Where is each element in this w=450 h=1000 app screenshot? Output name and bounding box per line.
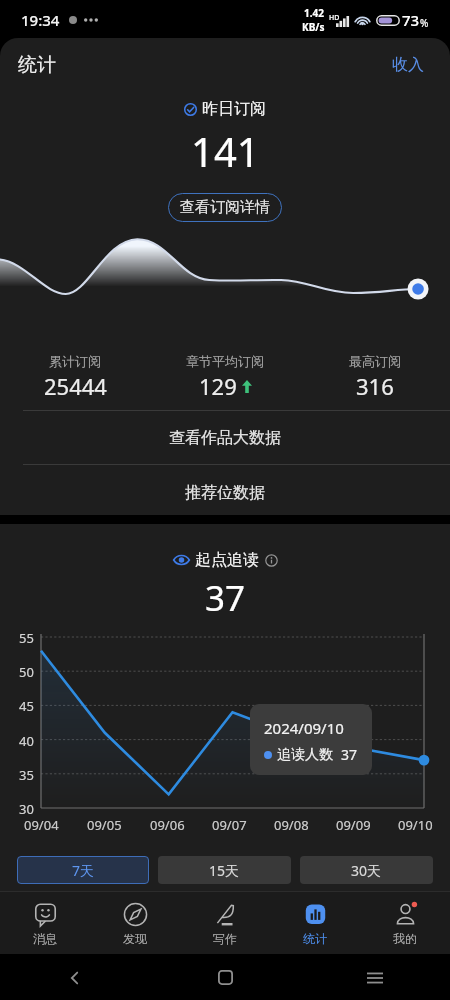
- staticText: 55: [19, 629, 34, 647]
- staticText: 45: [19, 697, 34, 715]
- button[interactable]: 发现: [90, 892, 180, 954]
- staticText: 1.42: [304, 6, 324, 20]
- staticText: 起点追读: [195, 550, 259, 570]
- staticText: 09/07: [212, 816, 247, 834]
- staticText: 查看订阅详情: [180, 198, 270, 217]
- button[interactable]: 写作: [180, 892, 270, 954]
- staticText: 累计订阅: [49, 353, 101, 369]
- staticText: 19:34: [21, 10, 60, 30]
- staticText: 316: [356, 371, 394, 401]
- staticText: 推荐位数据: [185, 483, 265, 503]
- button[interactable]: 统计: [270, 892, 360, 954]
- staticText: 37: [205, 574, 246, 622]
- other: Recents: [367, 972, 383, 984]
- staticText: 发现: [123, 931, 147, 946]
- staticText: 09/06: [150, 816, 185, 834]
- staticText: 50: [19, 663, 34, 681]
- staticText: 09/10: [398, 816, 433, 834]
- button[interactable]: 查看订阅详情: [168, 193, 282, 222]
- staticText: %: [420, 16, 429, 30]
- button[interactable]: 查看作品大数据: [0, 411, 450, 464]
- other: Back: [67, 970, 83, 986]
- staticText: 37: [341, 745, 358, 764]
- staticText: 30: [19, 800, 34, 818]
- staticText: 追读人数: [277, 746, 333, 764]
- staticText: 30天: [351, 861, 382, 880]
- staticText: 我的: [393, 931, 417, 946]
- staticText: 25444: [44, 371, 107, 401]
- staticText: 昨日订阅: [202, 99, 266, 119]
- button[interactable]: 消息: [0, 892, 90, 954]
- staticText: 消息: [33, 931, 57, 946]
- staticText: 09/05: [87, 816, 122, 834]
- staticText: 统计: [18, 53, 56, 77]
- staticText: 40: [19, 732, 34, 750]
- button[interactable]: 7天: [17, 856, 149, 884]
- button[interactable]: 15天: [158, 856, 291, 884]
- staticText: 73: [402, 10, 420, 30]
- staticText: 查看作品大数据: [169, 428, 281, 448]
- staticText: 129: [199, 371, 237, 401]
- staticText: 统计: [303, 931, 327, 946]
- button[interactable]: 推荐位数据: [0, 468, 450, 515]
- staticText: 2024/09/10: [264, 718, 344, 738]
- other: Home: [218, 970, 233, 985]
- other: Info: [265, 554, 278, 567]
- button[interactable]: 30天: [300, 856, 433, 884]
- button[interactable]: 我的: [360, 892, 450, 954]
- staticText: 141: [191, 124, 260, 178]
- staticText: KB/s: [302, 20, 325, 34]
- staticText: 章节平均订阅: [186, 353, 264, 369]
- staticText: 09/09: [336, 816, 371, 834]
- staticText: HD: [329, 13, 340, 23]
- staticText: 35: [19, 766, 34, 784]
- staticText: 15天: [209, 861, 240, 880]
- staticText: 最高订阅: [349, 353, 401, 369]
- staticText: 09/04: [24, 816, 59, 834]
- staticText: 收入: [392, 55, 424, 75]
- staticText: 7天: [72, 861, 95, 880]
- button[interactable]: 收入: [366, 43, 450, 87]
- staticText: 09/08: [274, 816, 309, 834]
- staticText: 写作: [213, 931, 237, 946]
